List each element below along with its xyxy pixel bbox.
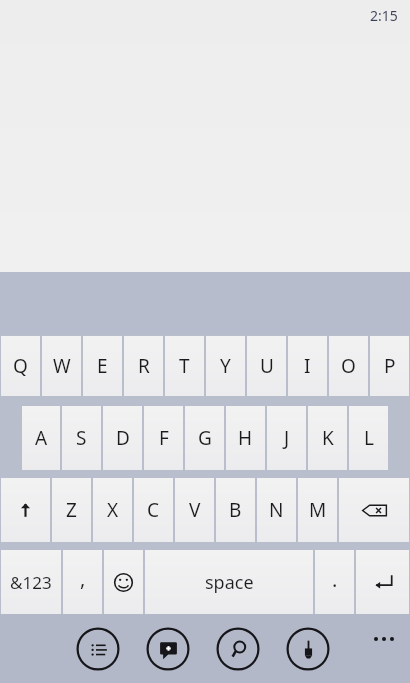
button[interactable]: Suggestions list [72, 623, 124, 675]
staticText: W [53, 353, 71, 379]
staticText: B [229, 497, 242, 523]
staticText: U [260, 353, 274, 379]
button[interactable]: space [145, 550, 313, 614]
button[interactable]: J [267, 406, 306, 470]
staticText: X [107, 497, 119, 523]
staticText: . [332, 566, 338, 593]
button[interactable]: Search [212, 623, 264, 675]
staticText: T [179, 353, 190, 379]
staticText: V [189, 497, 201, 523]
button[interactable]: S [62, 406, 101, 470]
staticText: Y [220, 353, 231, 379]
button[interactable]: Enter [356, 550, 409, 614]
button[interactable]: &123 [1, 550, 61, 614]
staticText: R [138, 353, 150, 379]
button[interactable]: New message [142, 623, 194, 675]
button[interactable]: F [144, 406, 183, 470]
staticText: A [35, 425, 48, 451]
staticText: F [159, 425, 169, 451]
staticText: 2:15 [370, 6, 398, 25]
button[interactable]: Shift [1, 478, 50, 542]
button[interactable]: Theme [282, 623, 334, 675]
button[interactable]: O [329, 336, 368, 396]
staticText: N [269, 497, 284, 523]
button[interactable]: X [93, 478, 132, 542]
button[interactable]: I [288, 336, 327, 396]
button[interactable]: P [370, 336, 409, 396]
button[interactable]: R [124, 336, 163, 396]
staticText: space [205, 570, 254, 595]
staticText: C [147, 497, 160, 523]
staticText: &123 [10, 571, 52, 594]
staticText: M [309, 497, 327, 523]
staticText: P [384, 353, 396, 379]
button[interactable]: E [83, 336, 122, 396]
staticText: S [76, 425, 87, 451]
button[interactable]: V [175, 478, 214, 542]
button[interactable]: Q [1, 336, 40, 396]
staticText: O [341, 353, 356, 379]
button[interactable]: U [247, 336, 286, 396]
staticText: L [364, 425, 374, 451]
staticText: Z [66, 497, 77, 523]
button[interactable]: Emoji [104, 550, 143, 614]
button[interactable]: G [185, 406, 224, 470]
staticText: D [116, 425, 130, 451]
button[interactable]: . [315, 550, 354, 614]
button[interactable]: More options [374, 637, 394, 641]
button[interactable]: B [216, 478, 255, 542]
button[interactable]: K [308, 406, 347, 470]
staticText: J [284, 425, 290, 451]
button[interactable]: A [22, 406, 60, 470]
button[interactable]: L [349, 406, 388, 470]
staticText: K [322, 425, 334, 451]
button[interactable]: D [103, 406, 142, 470]
button[interactable]: N [257, 478, 296, 542]
button[interactable]: Backspace [339, 478, 409, 542]
button[interactable]: Y [206, 336, 245, 396]
button[interactable]: C [134, 478, 173, 542]
staticText: , [80, 565, 86, 592]
button[interactable]: , [63, 550, 102, 614]
staticText: G [198, 425, 212, 451]
button[interactable]: H [226, 406, 265, 470]
button[interactable]: M [298, 478, 337, 542]
button[interactable]: Z [52, 478, 91, 542]
button[interactable]: T [165, 336, 204, 396]
staticText: I [304, 353, 311, 379]
staticText: E [97, 353, 108, 379]
staticText: H [238, 425, 253, 451]
button[interactable]: W [42, 336, 81, 396]
staticText: Q [13, 353, 28, 379]
